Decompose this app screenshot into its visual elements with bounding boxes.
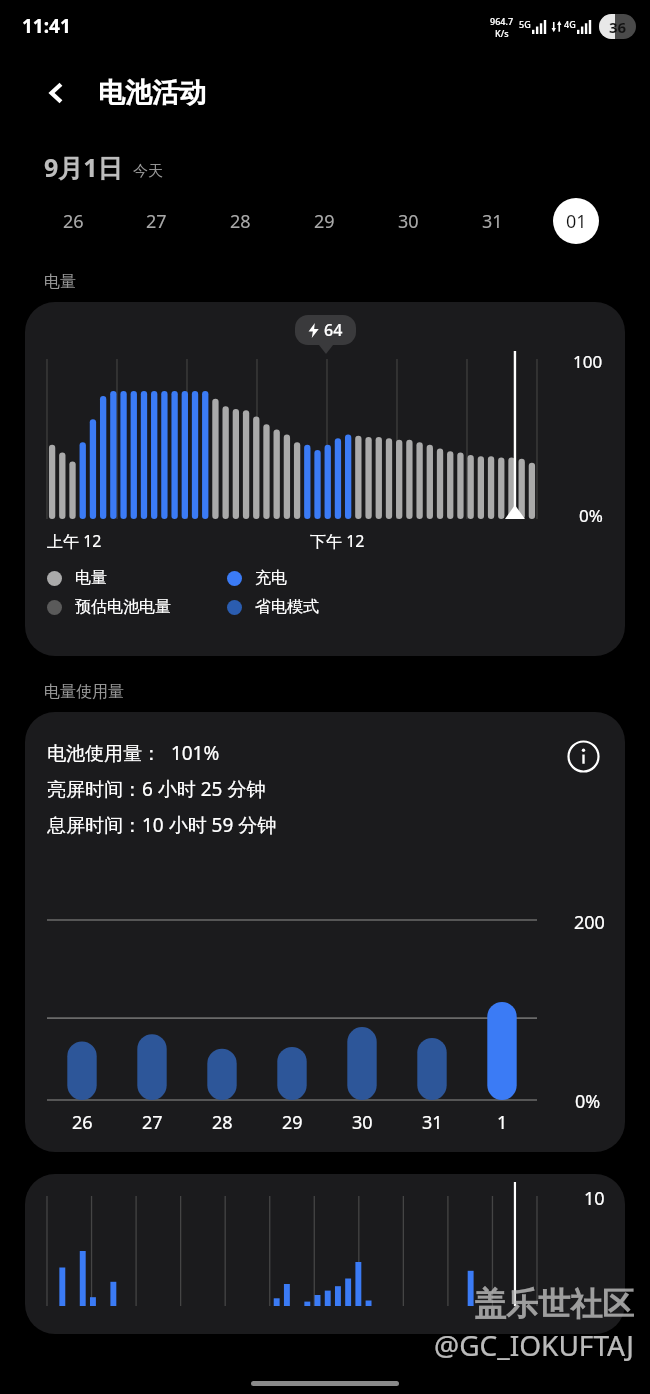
- staticText: @GC_IOKUFTAJ: [434, 1326, 634, 1364]
- staticText: 电量: [75, 568, 107, 588]
- staticText: 0%: [575, 1089, 601, 1114]
- staticText: 4G: [564, 18, 576, 30]
- staticText: 电池活动: [98, 76, 206, 110]
- button[interactable]: 64: [25, 302, 625, 656]
- staticText: 200: [574, 910, 605, 935]
- staticText: 30: [352, 1110, 373, 1135]
- button[interactable]: 10: [25, 1174, 625, 1334]
- staticText: 1: [497, 1110, 508, 1135]
- staticText: 0%: [579, 504, 603, 527]
- staticText: 27: [142, 1110, 163, 1135]
- staticText: 电量: [44, 272, 76, 292]
- button[interactable]: Back: [34, 70, 80, 116]
- staticText: 5G: [519, 18, 531, 30]
- staticText: 下午 12: [310, 530, 365, 552]
- staticText: 964.7: [490, 15, 514, 27]
- staticText: 36: [609, 17, 627, 37]
- button[interactable]: 27: [115, 192, 198, 250]
- staticText: 10: [584, 1186, 605, 1211]
- staticText: 64: [324, 319, 343, 341]
- staticText: K/s: [495, 27, 509, 39]
- staticText: 28: [230, 209, 251, 234]
- button[interactable]: 电池使用量： 101%: [25, 712, 625, 1152]
- staticText: 上午 12: [47, 530, 102, 552]
- staticText: 11:41: [22, 13, 71, 39]
- button[interactable]: 28: [198, 192, 282, 250]
- staticText: 省电模式: [255, 597, 319, 617]
- button[interactable]: 电量: [47, 568, 227, 588]
- staticText: 电量使用量: [44, 682, 124, 702]
- staticText: 100: [573, 350, 603, 373]
- button[interactable]: 29: [282, 192, 366, 250]
- staticText: 9月1日: [44, 150, 123, 184]
- button[interactable]: 01: [534, 192, 618, 250]
- button[interactable]: 预估电池电量: [47, 597, 227, 617]
- button[interactable]: 30: [366, 192, 450, 250]
- staticText: 31: [482, 209, 503, 234]
- button[interactable]: 省电模式: [227, 597, 319, 617]
- button[interactable]: 充电: [227, 568, 287, 588]
- staticText: 27: [146, 209, 167, 234]
- staticText: 29: [282, 1110, 303, 1135]
- button[interactable]: 26: [32, 192, 115, 250]
- staticText: 预估电池电量: [75, 597, 171, 617]
- staticText: 充电: [255, 568, 287, 588]
- staticText: 26: [72, 1110, 93, 1135]
- staticText: 息屏时间：10 小时 59 分钟: [47, 812, 277, 838]
- staticText: 29: [314, 209, 335, 234]
- button[interactable]: Information: [561, 734, 605, 778]
- staticText: 26: [63, 209, 84, 234]
- staticText: 31: [422, 1110, 443, 1135]
- staticText: 28: [212, 1110, 233, 1135]
- staticText: 盖乐世社区: [474, 1284, 634, 1324]
- staticText: 30: [398, 209, 419, 234]
- button[interactable]: 31: [450, 192, 534, 250]
- staticText: 亮屏时间：6 小时 25 分钟: [47, 776, 266, 802]
- staticText: 01: [566, 209, 587, 234]
- staticText: 电池使用量： 101%: [47, 740, 220, 766]
- staticText: 今天: [133, 162, 163, 181]
